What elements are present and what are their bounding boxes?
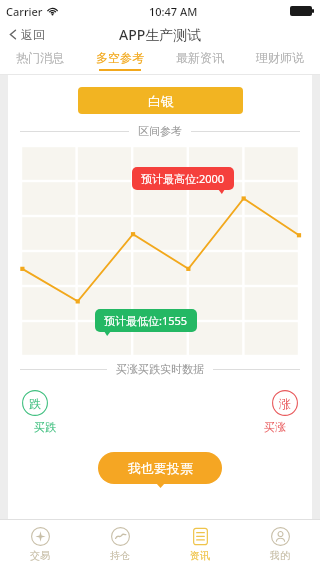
staticText: 买涨买跌实时数据: [116, 362, 204, 376]
staticText: 区间参考: [138, 124, 182, 138]
staticText: 我也要投票: [128, 460, 193, 476]
staticText: 理财师说: [256, 50, 304, 65]
button[interactable]: 我的: [240, 520, 320, 568]
staticText: 预计最高位:2000: [141, 171, 225, 186]
button[interactable]: 涨: [264, 390, 298, 434]
button[interactable]: 热门消息: [0, 46, 80, 74]
staticText: APP生产测试: [119, 25, 202, 44]
staticText: 热门消息: [16, 50, 64, 65]
staticText: Carrier: [6, 4, 43, 19]
staticText: 返回: [21, 27, 45, 42]
staticText: 持仓: [110, 549, 130, 562]
button[interactable]: 交易: [0, 520, 80, 568]
button[interactable]: 跌: [22, 390, 56, 434]
button[interactable]: 多空参考: [80, 46, 160, 74]
staticText: 涨: [279, 396, 291, 411]
staticText: 买涨: [264, 420, 286, 434]
staticText: 多空参考: [96, 50, 144, 65]
staticText: 10:47 AM: [149, 4, 198, 19]
staticText: 跌: [29, 396, 41, 411]
staticText: 预计最低位:1555: [104, 313, 188, 328]
staticText: 资讯: [190, 549, 210, 562]
staticText: 交易: [30, 549, 50, 562]
staticText: 白银: [148, 93, 174, 109]
button[interactable]: 返回: [6, 25, 47, 44]
button[interactable]: 白银: [78, 87, 243, 114]
staticText: 我的: [270, 549, 290, 562]
staticText: 买跌: [34, 420, 56, 434]
staticText: 最新资讯: [176, 50, 224, 65]
button[interactable]: 持仓: [80, 520, 160, 568]
button[interactable]: 最新资讯: [160, 46, 240, 74]
button[interactable]: 理财师说: [240, 46, 320, 74]
button[interactable]: 资讯: [160, 520, 240, 568]
button[interactable]: 我也要投票: [98, 452, 222, 484]
